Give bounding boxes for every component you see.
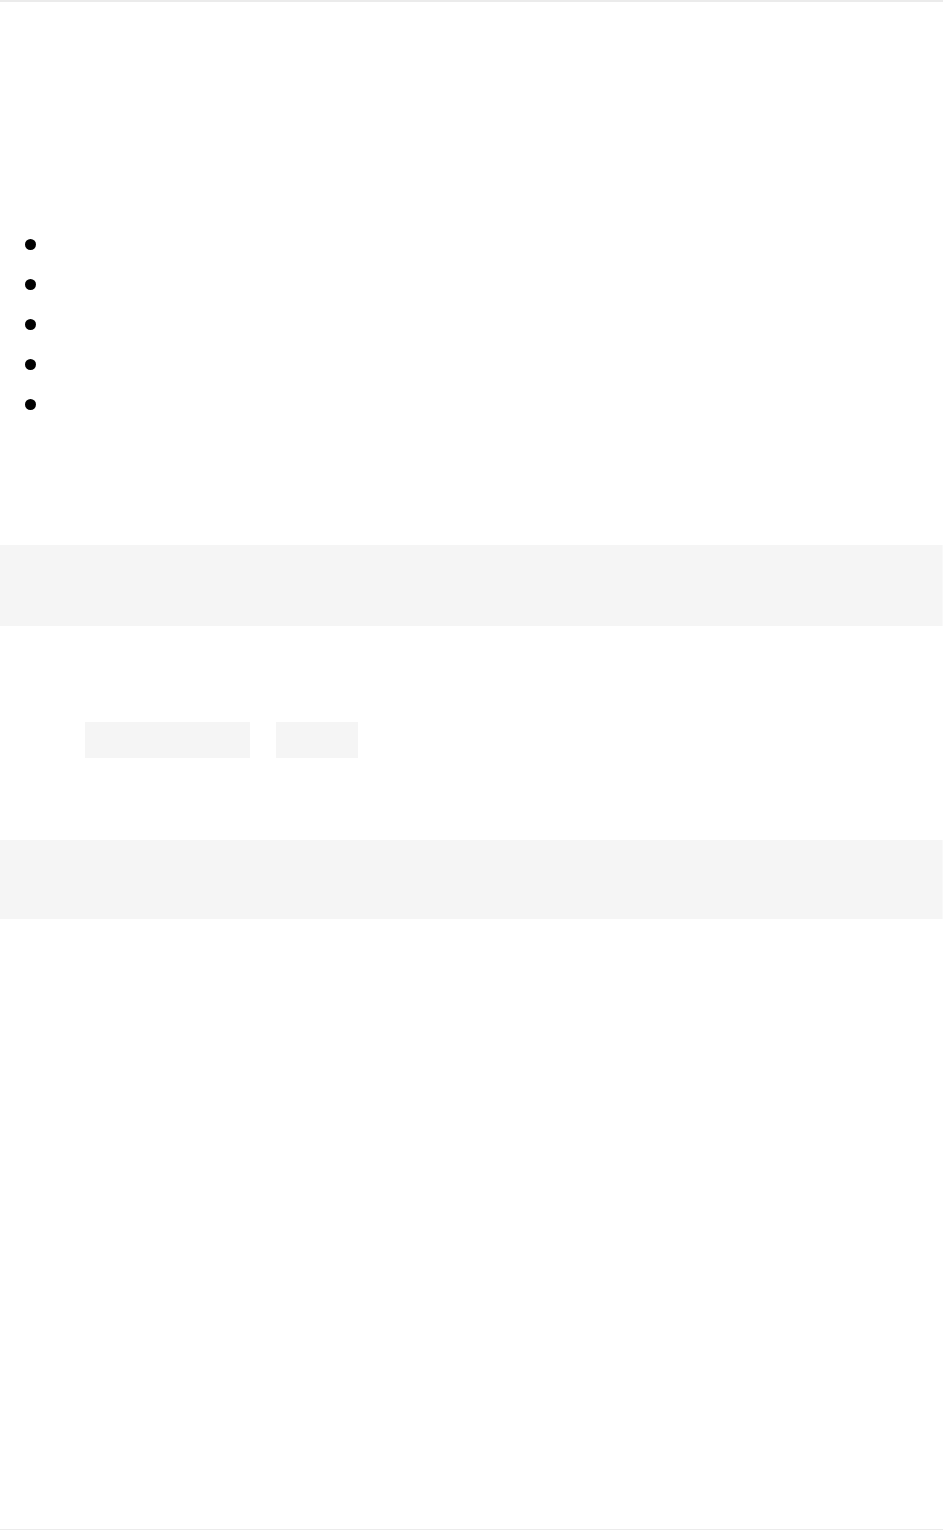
button[interactable]: List item <box>0 344 943 384</box>
button[interactable]: List item <box>0 384 943 424</box>
button[interactable]: List item <box>0 264 943 304</box>
button[interactable]: List item <box>0 224 943 264</box>
button[interactable]: List item <box>0 304 943 344</box>
